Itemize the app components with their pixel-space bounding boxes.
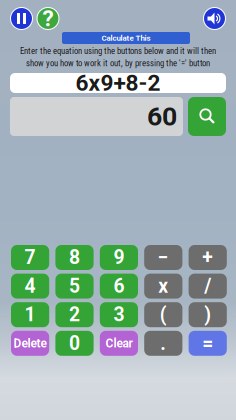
staticText: 7	[25, 246, 36, 269]
staticText: )	[204, 303, 211, 326]
button[interactable]: 2	[55, 302, 94, 327]
button[interactable]: 5	[55, 274, 94, 299]
button[interactable]: .	[144, 331, 182, 356]
staticText: x	[158, 275, 168, 297]
staticText: 9	[113, 246, 124, 269]
button[interactable]: 6	[100, 274, 138, 299]
staticText: /	[204, 275, 211, 297]
staticText: Calculate This	[101, 33, 150, 43]
staticText: 6x9+8-2	[75, 70, 160, 96]
staticText: 4	[25, 275, 36, 297]
button[interactable]: 9	[100, 245, 138, 270]
staticText: Delete	[14, 336, 47, 350]
staticText: ?	[42, 5, 53, 32]
button[interactable]: Search	[188, 97, 226, 136]
staticText: +	[202, 246, 213, 269]
button[interactable]: Clear	[100, 331, 138, 356]
button[interactable]: /	[189, 274, 227, 299]
button[interactable]: Delete	[11, 331, 49, 356]
button[interactable]: Help	[36, 7, 59, 30]
button[interactable]: Pause	[10, 7, 33, 30]
button[interactable]: (	[144, 302, 182, 327]
staticText: .	[160, 332, 166, 355]
staticText: Enter the equation using the buttons bel…	[20, 46, 216, 56]
button[interactable]: Sound	[203, 7, 226, 30]
button[interactable]: 8	[55, 245, 94, 270]
button[interactable]: −	[144, 245, 182, 270]
button[interactable]: =	[189, 331, 227, 356]
staticText: 0	[69, 332, 80, 355]
staticText: Clear	[105, 336, 132, 350]
staticText: 3	[113, 303, 124, 326]
staticText: 2	[69, 303, 80, 326]
staticText: 6	[113, 275, 124, 297]
staticText: 60	[147, 101, 177, 132]
button[interactable]: 0	[55, 331, 94, 356]
button[interactable]: x	[144, 274, 182, 299]
staticText: show you how to work it out, by pressing…	[26, 58, 210, 68]
staticText: 8	[69, 246, 80, 269]
button[interactable]: 7	[11, 245, 49, 270]
staticText: (	[160, 303, 167, 326]
staticText: 5	[69, 275, 80, 297]
staticText: −	[158, 246, 169, 269]
staticText: =	[202, 332, 213, 355]
button[interactable]: +	[189, 245, 227, 270]
staticText: 1	[25, 303, 36, 326]
button[interactable]: 4	[11, 274, 49, 299]
button[interactable]: )	[189, 302, 227, 327]
button[interactable]: 1	[11, 302, 49, 327]
button[interactable]: 3	[100, 302, 138, 327]
